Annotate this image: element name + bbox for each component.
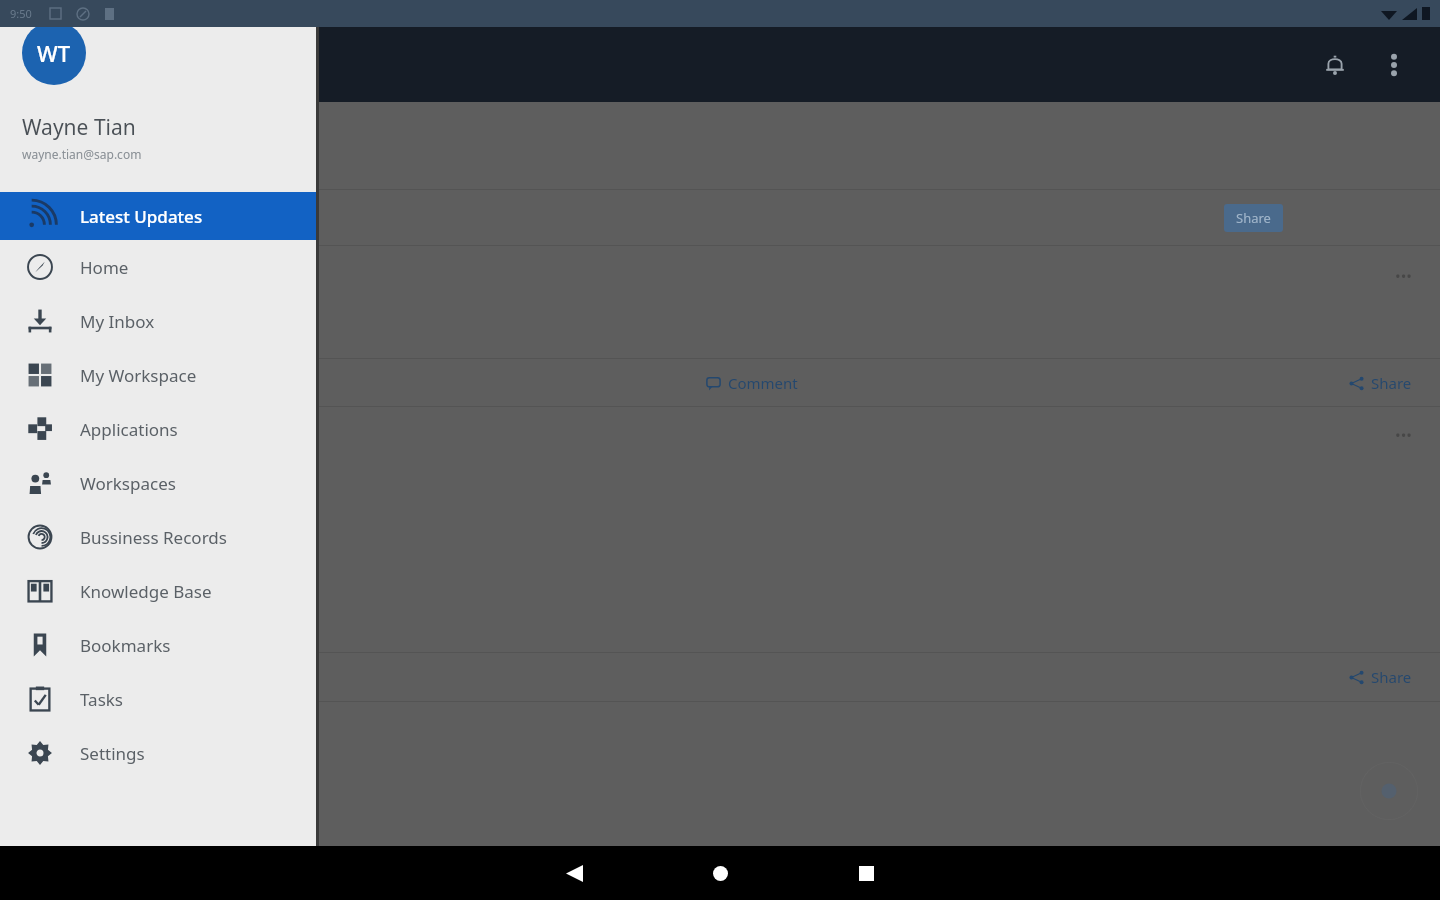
staticText: Settings xyxy=(80,742,145,765)
button[interactable]: Settings xyxy=(0,726,316,780)
button[interactable]: Recent apps xyxy=(836,846,896,900)
staticText: My Workspace xyxy=(80,364,197,387)
button[interactable]: Latest Updates xyxy=(0,192,316,240)
staticText: Wayne Tian xyxy=(22,113,136,142)
button[interactable]: Share xyxy=(1236,209,1271,227)
staticText: Applications xyxy=(80,418,178,441)
button[interactable]: Back xyxy=(544,846,604,900)
button[interactable]: Notifications xyxy=(1311,41,1359,89)
staticText: ••• xyxy=(1395,266,1412,286)
staticText: wayne.tian@sap.com xyxy=(22,146,142,162)
button[interactable]: Home xyxy=(690,846,750,900)
button[interactable]: WT xyxy=(22,21,86,85)
staticText: WT xyxy=(37,38,71,68)
button[interactable]: Bookmarks xyxy=(0,618,316,672)
staticText: ••• xyxy=(1395,425,1412,445)
button[interactable]: Knowledge Base xyxy=(0,564,316,618)
staticText: Workspaces xyxy=(80,472,176,495)
staticText: Bookmarks xyxy=(80,634,171,657)
button[interactable]: Create xyxy=(1360,762,1418,820)
button[interactable]: Workspaces xyxy=(0,456,316,510)
staticText: Comment xyxy=(728,373,798,393)
staticText: Share xyxy=(1371,667,1412,687)
staticText: Share xyxy=(1236,209,1271,227)
staticText: 9:50 xyxy=(10,6,32,21)
staticText: ...birty... xyxy=(6,113,51,129)
staticText: Knowledge Base xyxy=(80,580,212,603)
button[interactable]: Applications xyxy=(0,402,316,456)
button[interactable]: Bussiness Records xyxy=(0,510,316,564)
staticText: My Inbox xyxy=(80,310,155,333)
button[interactable]: Tasks xyxy=(0,672,316,726)
button[interactable]: My Workspace xyxy=(0,348,316,402)
button[interactable]: My Inbox xyxy=(0,294,316,348)
staticText: Bussiness Records xyxy=(80,526,227,549)
button[interactable]: Home xyxy=(0,240,316,294)
staticText: ...ment (Completed) xyxy=(2,585,123,603)
staticText: Home xyxy=(80,256,129,279)
button[interactable]: More options xyxy=(1370,41,1418,89)
staticText: Tasks xyxy=(80,688,123,711)
staticText: Latest Updates xyxy=(80,205,203,228)
staticText: Share xyxy=(1371,373,1412,393)
